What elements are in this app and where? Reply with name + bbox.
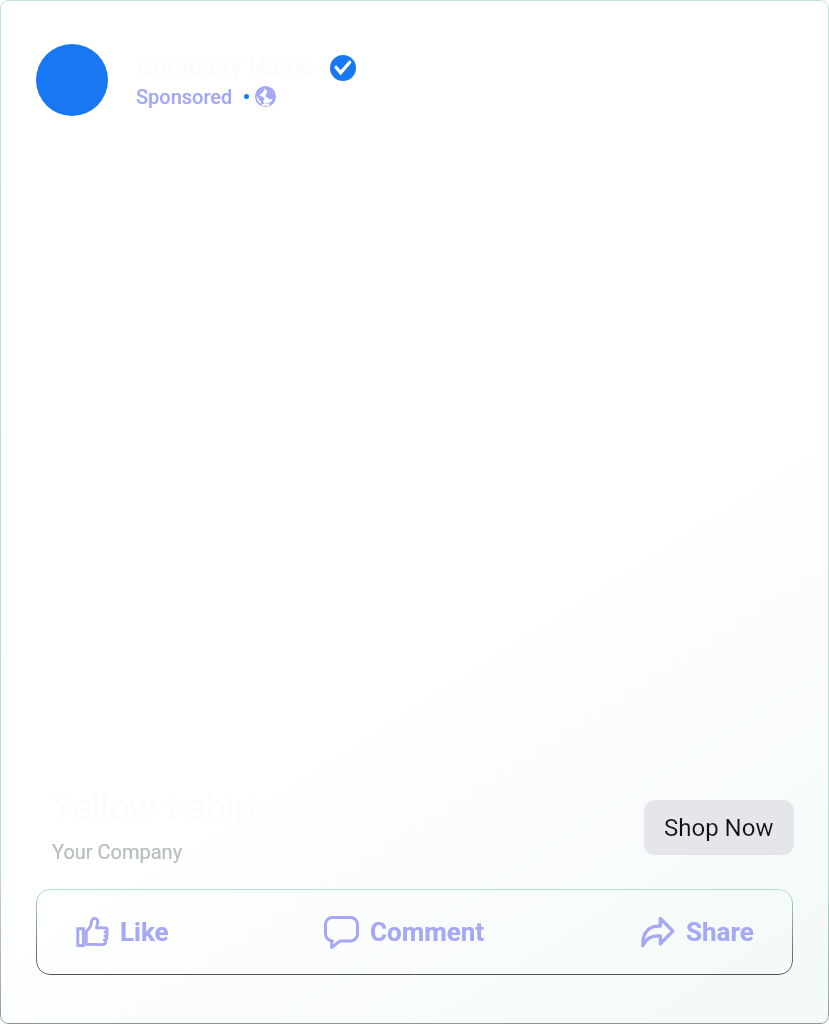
button[interactable]: Verified account: [330, 55, 356, 81]
button[interactable]: Company Name: [136, 44, 356, 108]
staticText: Your Company: [52, 840, 183, 863]
staticText: Comment: [370, 917, 485, 947]
button[interactable]: Shop Now: [644, 800, 794, 855]
staticText: Shop Now: [664, 814, 774, 842]
staticText: Sponsored: [136, 85, 233, 108]
button[interactable]: Comment: [324, 889, 485, 975]
staticText: Share: [686, 917, 754, 947]
button[interactable]: Share: [640, 889, 754, 975]
button[interactable]: Public audience: [255, 86, 276, 107]
button[interactable]: Company profile picture: [36, 44, 108, 116]
button[interactable]: Like: [75, 889, 169, 975]
staticText: Like: [120, 917, 169, 947]
